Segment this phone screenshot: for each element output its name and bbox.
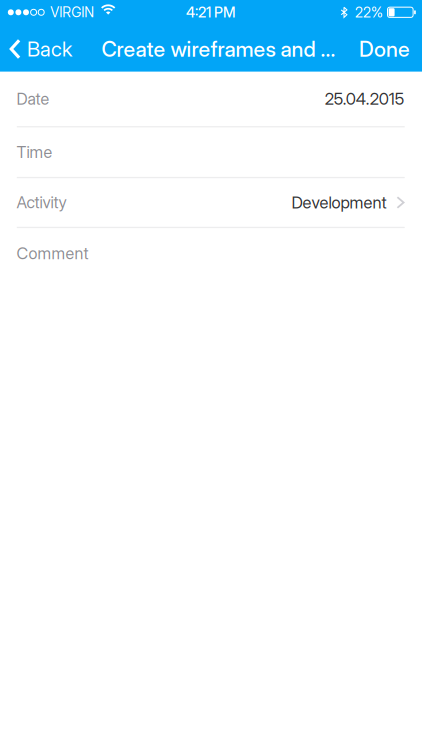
staticText: Create wireframes and ... bbox=[101, 36, 335, 62]
button[interactable]: Comment bbox=[0, 228, 422, 279]
staticText: Back bbox=[27, 37, 72, 61]
staticText: 4:21 PM bbox=[186, 4, 236, 21]
staticText: Date bbox=[17, 89, 50, 109]
staticText: Time bbox=[17, 142, 53, 162]
staticText: 25.04.2015 bbox=[325, 89, 405, 109]
button[interactable]: Done bbox=[347, 26, 422, 72]
staticText: 22% bbox=[355, 4, 383, 21]
button[interactable]: Date bbox=[0, 72, 422, 126]
button[interactable]: Time bbox=[0, 127, 422, 177]
staticText: Development bbox=[291, 192, 386, 212]
staticText: Comment bbox=[17, 244, 89, 263]
button[interactable]: Back bbox=[0, 26, 82, 72]
staticText: Activity bbox=[17, 193, 67, 212]
staticText: VIRGIN bbox=[50, 4, 94, 21]
button[interactable]: Activity bbox=[0, 178, 422, 227]
staticText: Done bbox=[359, 36, 410, 62]
